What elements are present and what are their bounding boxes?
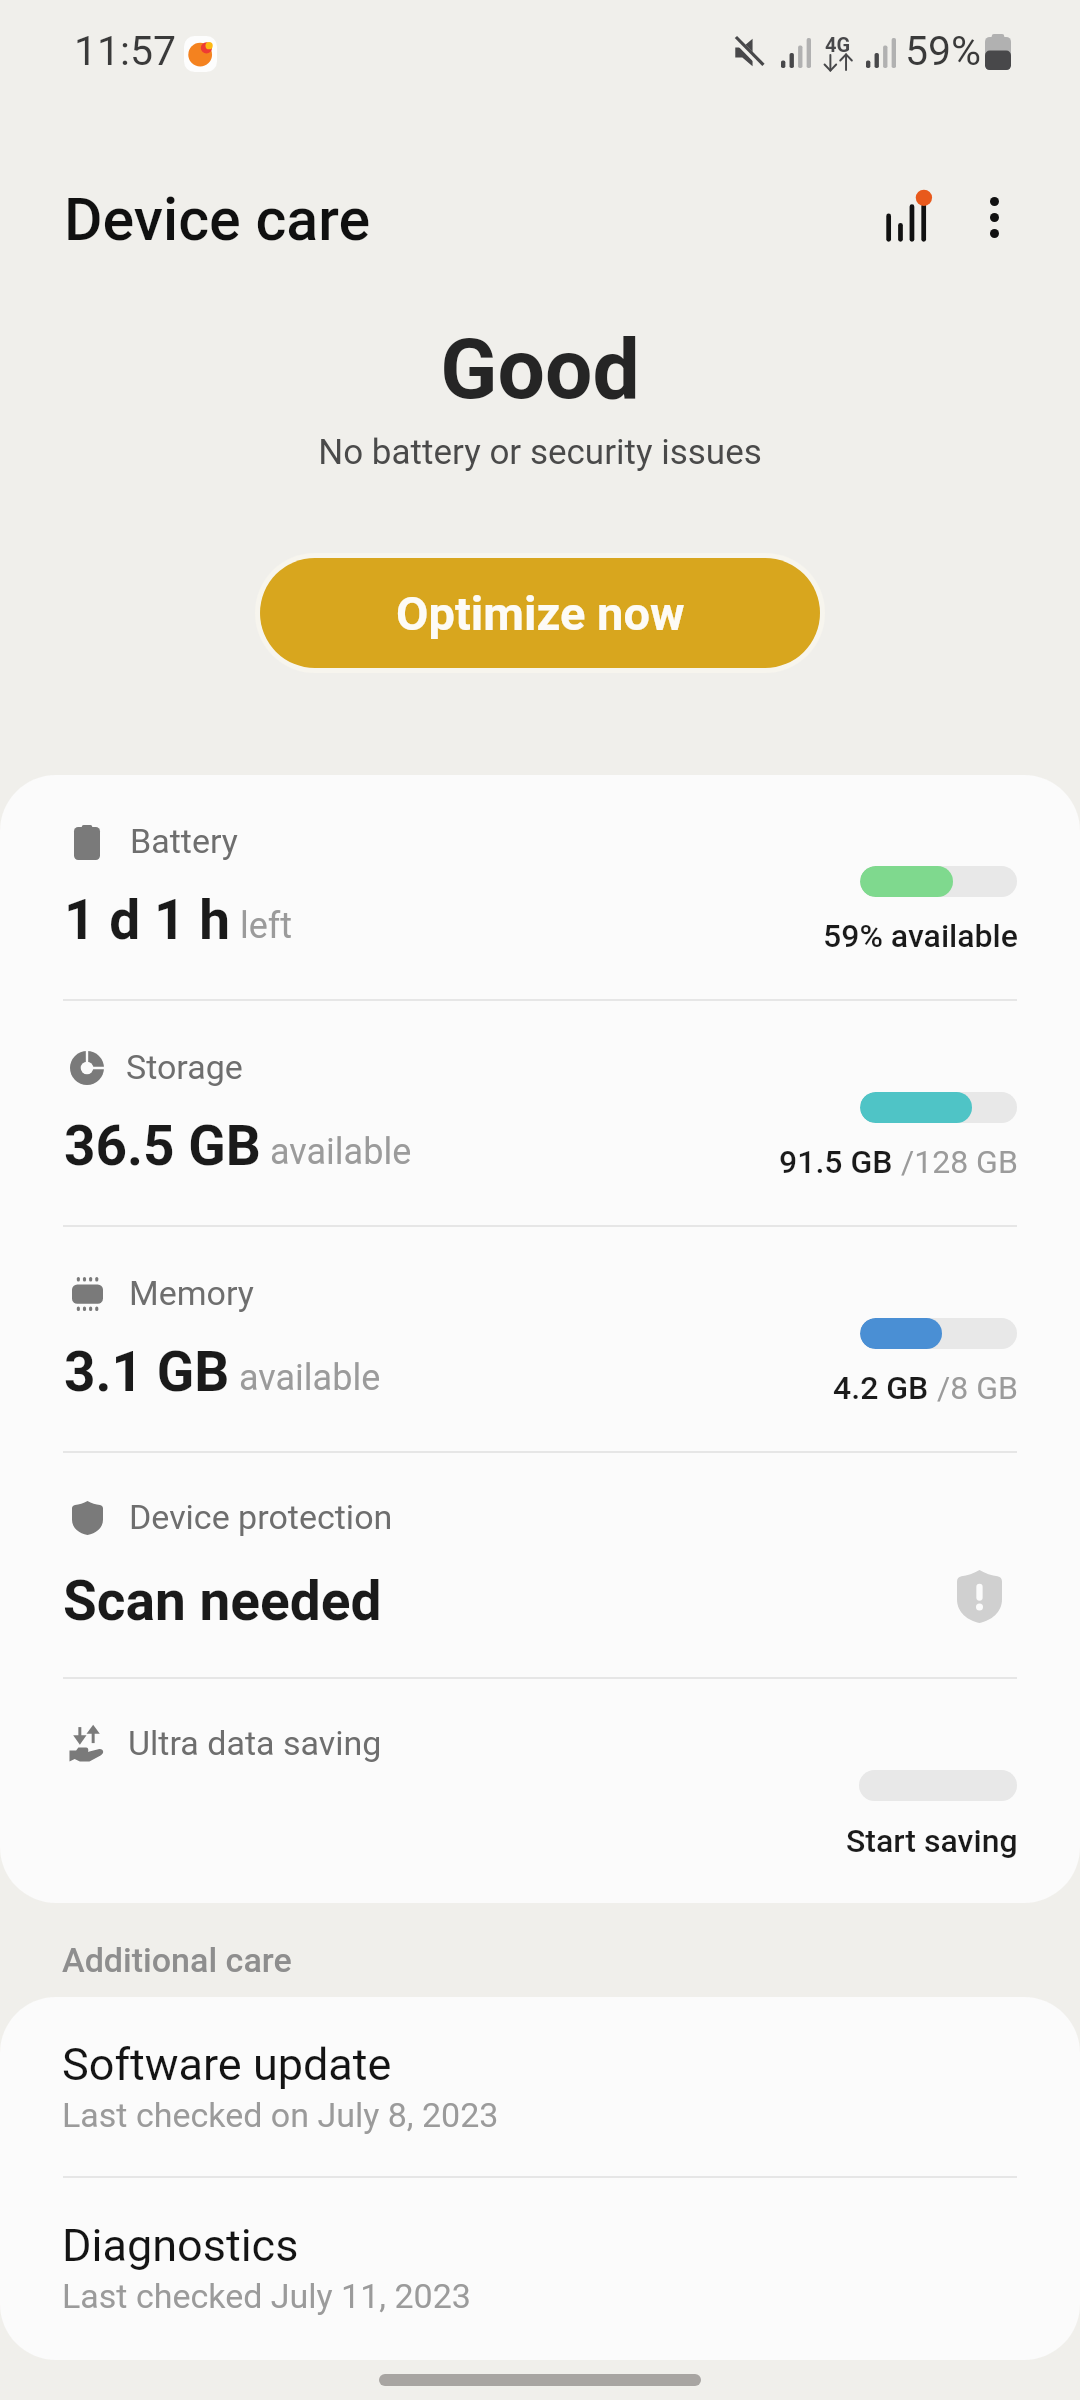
button[interactable]: Diagnostics [0, 2178, 1080, 2360]
staticText: 4G [825, 33, 851, 56]
staticText: 3.1 GB [64, 1340, 230, 1404]
staticText: Good [0, 320, 1080, 418]
staticText: Last checked July 11, 2023 [62, 2276, 471, 2316]
staticText: Memory [129, 1273, 254, 1313]
staticText: /128 GB [901, 1143, 1018, 1181]
staticText: 59% [905, 27, 982, 75]
staticText: available [270, 1131, 412, 1173]
button[interactable]: Ultra data saving [0, 1679, 1080, 1903]
button[interactable]: Usage history [840, 145, 970, 293]
button[interactable]: More options [930, 145, 1058, 293]
staticText: /8 GB [937, 1369, 1018, 1407]
staticText: left [240, 905, 293, 947]
staticText: Device care [64, 185, 371, 254]
staticText: 4.2 GB [833, 1369, 937, 1407]
staticText: Software update [62, 2038, 392, 2091]
staticText: Storage [126, 1047, 243, 1087]
staticText: Ultra data saving [128, 1723, 382, 1763]
button[interactable]: Software update [0, 1997, 1080, 2176]
staticText: Start saving [846, 1822, 1018, 1860]
staticText: Battery [130, 821, 238, 861]
staticText: Scan needed [63, 1569, 382, 1633]
staticText: Optimize now [396, 586, 685, 641]
button[interactable]: Memory [0, 1227, 1080, 1451]
button[interactable]: Optimize now [260, 558, 820, 668]
staticText: 36.5 GB [64, 1114, 261, 1178]
button[interactable]: Device protection [0, 1453, 1080, 1677]
staticText: No battery or security issues [0, 432, 1080, 473]
button[interactable]: Battery [0, 775, 1080, 999]
staticText: 11:57 [74, 27, 177, 75]
button[interactable]: Storage [0, 1001, 1080, 1225]
staticText: 59% available [823, 917, 1018, 955]
staticText: Diagnostics [62, 2219, 299, 2272]
staticText: 1 d 1 h [64, 888, 231, 952]
staticText: available [239, 1357, 381, 1399]
staticText: Last checked on July 8, 2023 [62, 2095, 499, 2135]
staticText: Device protection [129, 1497, 393, 1537]
staticText: Additional care [62, 1940, 292, 1980]
staticText: 91.5 GB [779, 1143, 901, 1181]
